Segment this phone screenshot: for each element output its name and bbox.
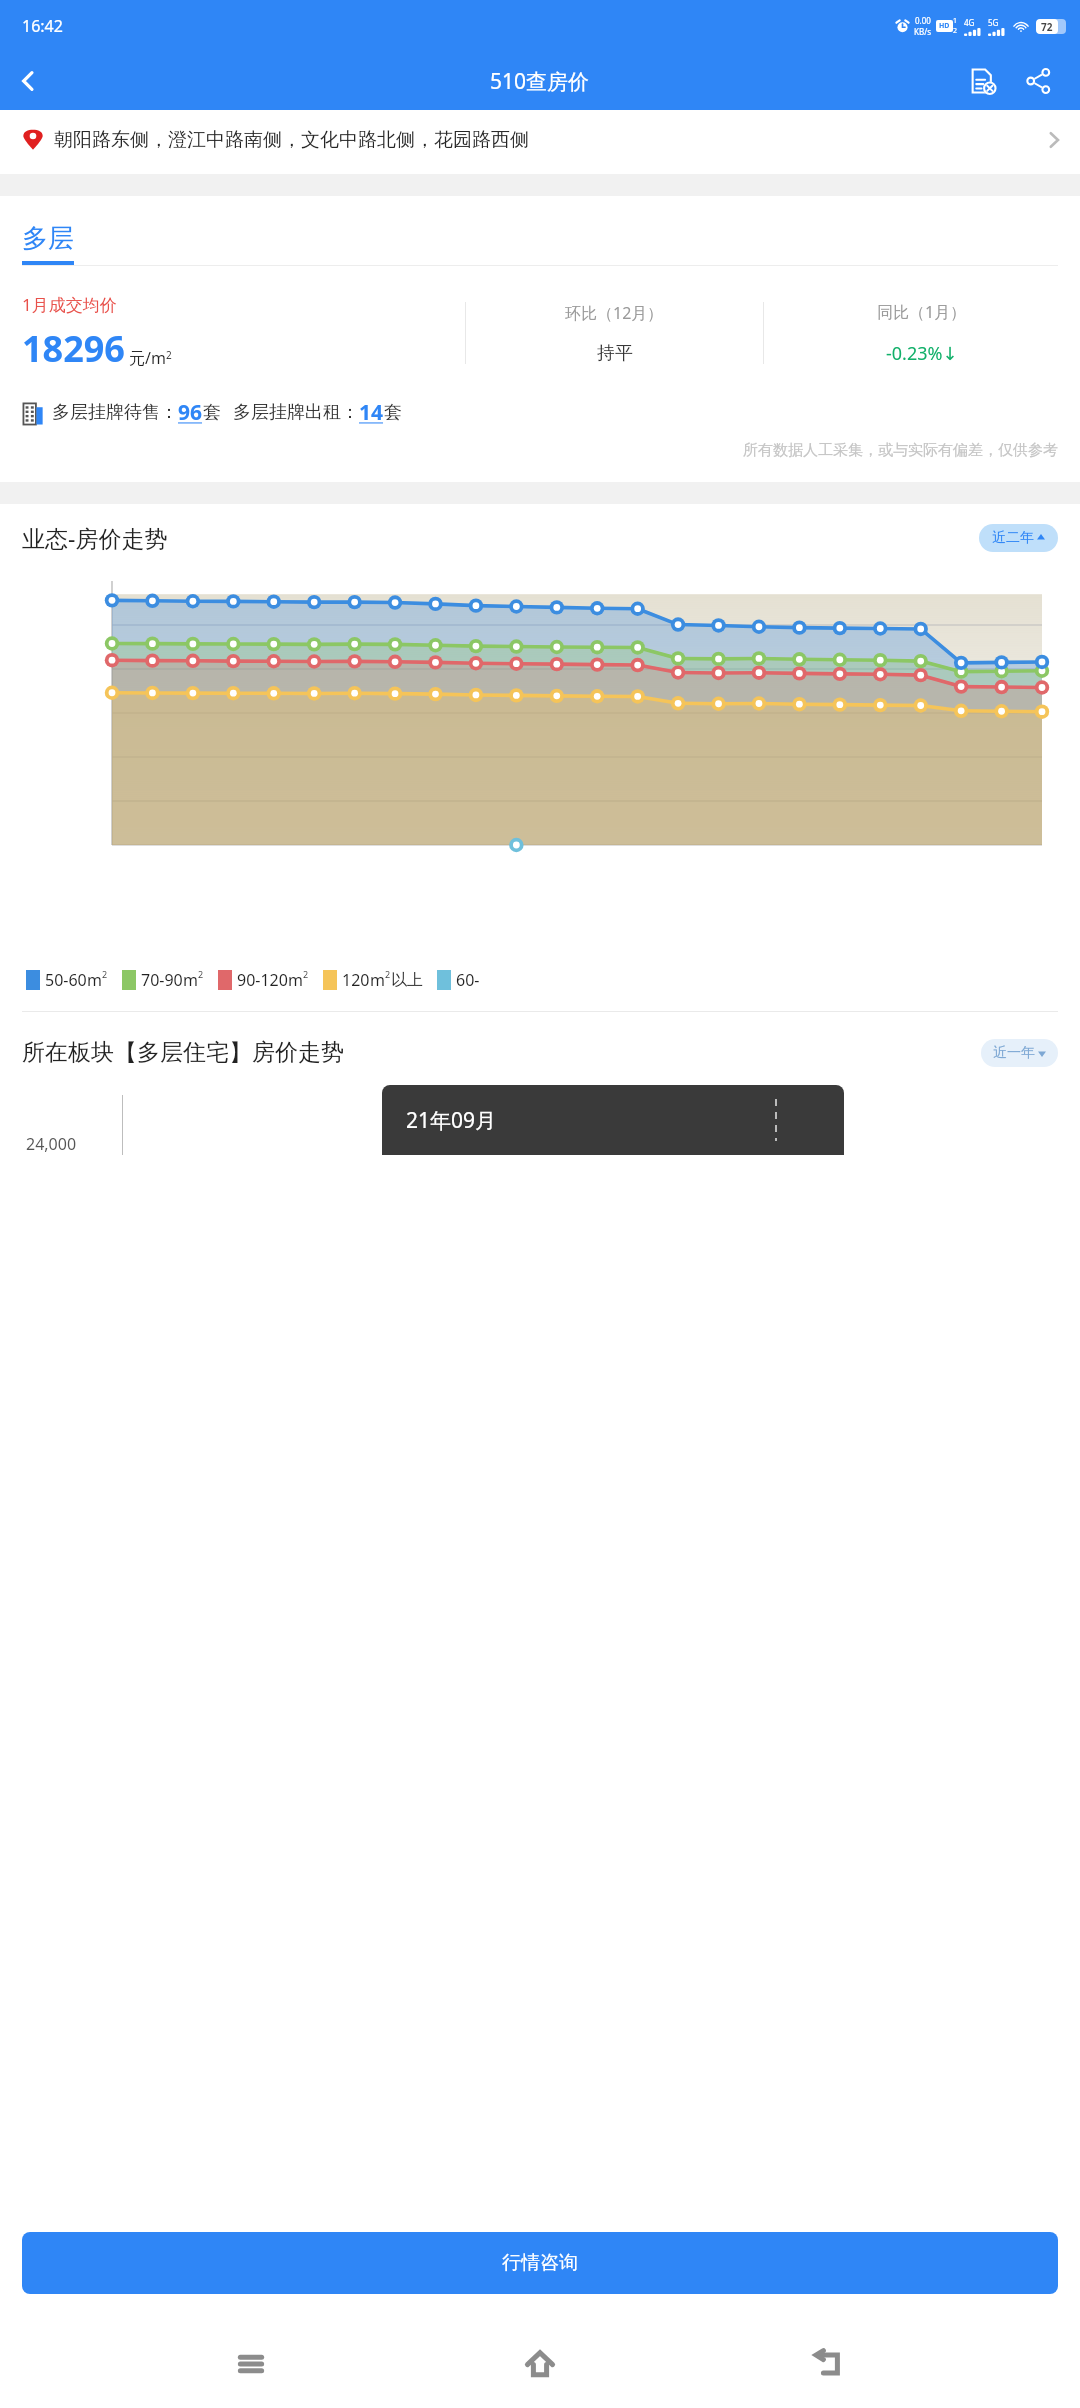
button[interactable]: 近二年 <box>979 524 1058 552</box>
staticText: 套 <box>384 401 402 424</box>
staticText: 多层 <box>22 222 74 255</box>
staticText: 16:42 <box>22 15 63 37</box>
staticText: 近二年 <box>992 529 1034 547</box>
staticText: 90-120 <box>237 969 288 991</box>
staticText: 60- <box>456 969 480 991</box>
staticText: 2 <box>953 26 958 36</box>
staticText: 2 <box>198 968 204 980</box>
staticText: 朝阳路东侧，澄江中路南侧，文化中路北侧，花园路西侧 <box>54 128 1036 152</box>
staticText: 4G <box>964 17 975 28</box>
staticText: 近一年 <box>993 1044 1035 1062</box>
staticText: 120 <box>342 969 370 991</box>
staticText: 21年09月 <box>406 1106 497 1135</box>
staticText: 所有数据人工采集，或与实际有偏差，仅供参考 <box>0 441 1058 460</box>
staticText: 同比（1月） <box>877 301 967 323</box>
staticText: m <box>183 969 198 991</box>
button[interactable]: Back <box>0 53 56 109</box>
staticText: 18296 <box>22 324 125 373</box>
staticText: 元/m <box>129 347 166 369</box>
staticText: 1月成交均价 <box>22 293 117 316</box>
staticText: 套 <box>203 401 221 424</box>
button[interactable]: Report <box>954 53 1010 109</box>
staticText: 14 <box>359 398 384 427</box>
staticText: m <box>87 969 102 991</box>
staticText: 行情咨询 <box>502 2251 578 2275</box>
staticText: 24,000 <box>26 1133 77 1155</box>
staticText: 96 <box>178 398 203 427</box>
staticText: 70-90 <box>141 969 183 991</box>
staticText: 2 <box>102 968 108 980</box>
staticText: 业态-房价走势 <box>22 522 168 553</box>
staticText: 环比（12月） <box>565 302 664 324</box>
button[interactable]: 行情咨询 <box>22 2232 1058 2294</box>
staticText: 2 <box>303 968 309 980</box>
staticText: HD <box>939 21 950 31</box>
staticText: m <box>370 969 385 991</box>
button[interactable]: Back <box>791 2326 867 2402</box>
staticText: 510查房价 <box>490 67 590 96</box>
staticText: KB/s <box>914 26 931 37</box>
staticText: 5G <box>988 17 999 28</box>
button[interactable]: 近一年 <box>981 1039 1058 1067</box>
staticText: 2 <box>166 348 172 362</box>
button[interactable]: Share <box>1010 53 1066 109</box>
staticText: 多层挂牌出租： <box>233 401 359 424</box>
button[interactable]: Home <box>502 2326 578 2402</box>
staticText: 0.00 <box>915 15 931 26</box>
staticText: 2 <box>385 968 391 980</box>
staticText: 72 <box>1041 20 1053 34</box>
staticText: 多层挂牌待售： <box>52 401 178 424</box>
staticText: 以上 <box>391 970 423 990</box>
staticText: -0.23%↓ <box>886 341 958 366</box>
staticText: m <box>288 969 303 991</box>
staticText: 持平 <box>597 342 633 365</box>
button[interactable]: Recents <box>213 2326 289 2402</box>
staticText: 50-60 <box>45 969 87 991</box>
staticText: 所在板块【多层住宅】房价走势 <box>22 1038 344 1067</box>
button[interactable]: 朝阳路东侧，澄江中路南侧，文化中路北侧，花园路西侧 <box>0 110 1080 174</box>
staticText: 1 <box>953 16 958 26</box>
